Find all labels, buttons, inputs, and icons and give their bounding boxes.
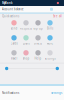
staticText: Invest xyxy=(34,42,42,45)
button[interactable]: Notifications xyxy=(2,91,19,95)
staticText: See all xyxy=(53,14,62,18)
button[interactable]: Cards xyxy=(8,35,20,46)
button[interactable]: More xyxy=(44,35,56,46)
staticText: MyBank xyxy=(2,1,13,5)
button[interactable]: Settings xyxy=(44,50,56,61)
button[interactable]: Travel xyxy=(8,50,20,61)
staticText: Bills xyxy=(47,27,53,30)
staticText: Request xyxy=(20,27,32,30)
staticText: Cards xyxy=(10,42,17,45)
staticText: Travel xyxy=(10,57,17,60)
button[interactable]: Loans xyxy=(20,35,32,46)
button[interactable]: Top up xyxy=(32,20,44,31)
staticText: Shop xyxy=(22,57,29,60)
button[interactable]: Shop xyxy=(20,50,32,61)
staticText: Notifications xyxy=(2,91,19,95)
staticText: Quick actions xyxy=(2,14,19,18)
button[interactable]: Settings xyxy=(51,91,62,95)
button[interactable]: Invest xyxy=(32,35,44,46)
staticText: More xyxy=(46,42,53,45)
staticText: Account balance xyxy=(2,7,24,11)
button[interactable]: Request xyxy=(20,20,32,31)
staticText: Settings xyxy=(51,91,62,95)
button[interactable]: Help xyxy=(32,50,44,61)
button[interactable]: Bills xyxy=(44,20,56,31)
staticText: Loans xyxy=(22,42,29,45)
staticText: Help xyxy=(34,57,41,60)
button[interactable]: Send xyxy=(8,20,20,31)
staticText: Send xyxy=(10,27,17,30)
staticText: Top up xyxy=(33,27,43,30)
staticText: Settings xyxy=(44,57,55,60)
